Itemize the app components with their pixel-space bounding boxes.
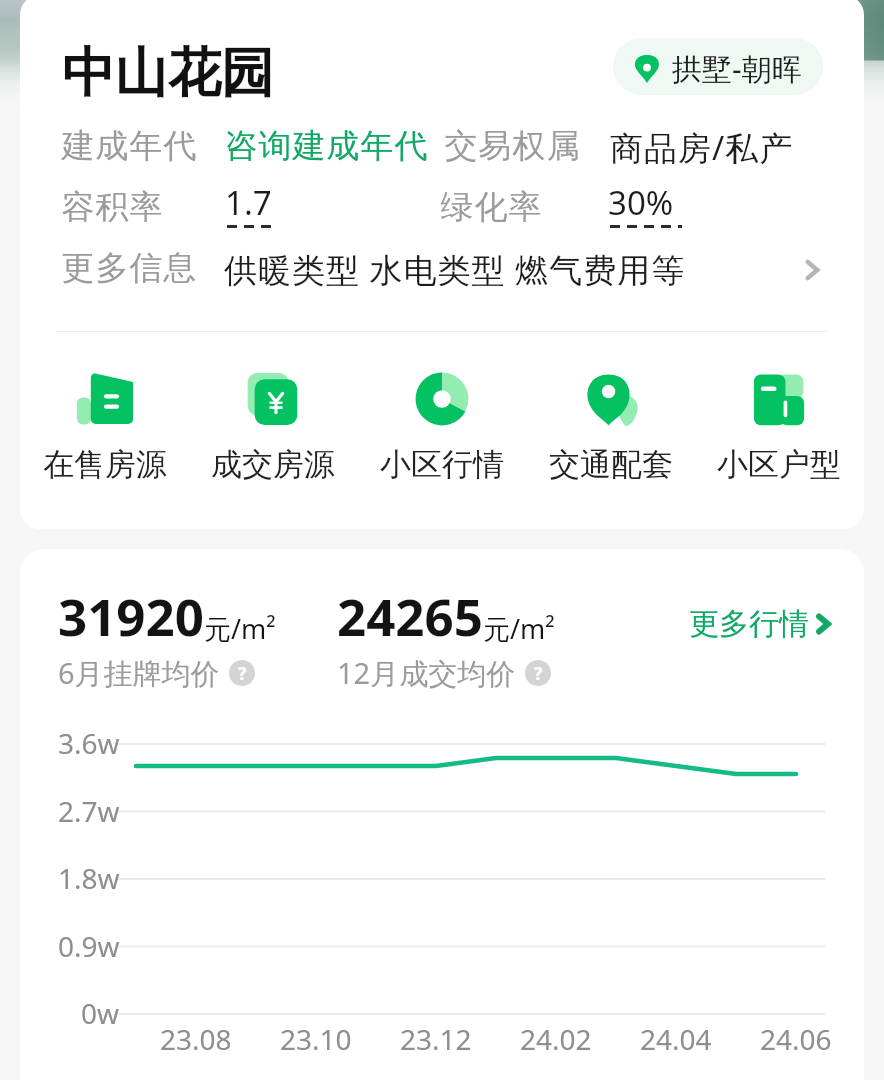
staticText: 咨询建成年代 [224, 125, 428, 167]
button[interactable]: 更多行情 [683, 599, 840, 649]
button[interactable]: 更多信息 [786, 244, 838, 296]
staticText: 商品房/私产 [610, 125, 794, 170]
staticText: 元/m² [204, 610, 276, 647]
button[interactable]: 小区户型 [695, 365, 863, 484]
staticText: 0w [81, 994, 120, 1030]
staticText: 24.06 [760, 1020, 832, 1058]
staticText: 绿化率 [440, 186, 542, 228]
staticText: 拱墅-朝晖 [672, 48, 802, 89]
button[interactable]: 小区行情 [358, 365, 526, 484]
staticText: 12月成交均价 [337, 653, 516, 693]
staticText: 1.7 [225, 180, 272, 225]
staticText: 小区户型 [717, 445, 841, 484]
staticText: 6月挂牌均价 [58, 653, 220, 693]
staticText: 中山花园 [62, 40, 274, 107]
staticText: ? [534, 661, 543, 686]
staticText: 在售房源 [43, 445, 167, 484]
staticText: 更多信息 [61, 247, 197, 289]
staticText: 更多行情 [689, 605, 809, 643]
staticText: 元/m² [483, 610, 555, 647]
staticText: 成交房源 [211, 445, 335, 484]
staticText: ? [238, 661, 247, 686]
button[interactable]: 交通配套 [527, 365, 695, 484]
staticText: 24265 [337, 581, 483, 650]
staticText: 1.8w [58, 859, 120, 895]
button[interactable]: 说明 [525, 660, 551, 686]
staticText: 0.9w [58, 927, 120, 963]
staticText: 31920 [58, 581, 204, 650]
staticText: 24.02 [520, 1020, 592, 1058]
staticText: 23.12 [400, 1020, 472, 1058]
button[interactable]: 说明 [229, 660, 255, 686]
staticText: 23.10 [280, 1020, 352, 1058]
staticText: 交易权属 [444, 125, 580, 167]
staticText: 24.04 [640, 1020, 712, 1058]
button[interactable]: 在售房源 [21, 365, 189, 484]
staticText: 容积率 [61, 186, 163, 228]
staticText: 建成年代 [61, 125, 197, 167]
staticText: 30% [608, 180, 674, 225]
staticText: 23.08 [160, 1020, 232, 1058]
staticText: 供暖类型 水电类型 燃气费用等 [224, 247, 686, 292]
staticText: 2.7w [58, 792, 120, 828]
staticText: 交通配套 [549, 445, 673, 484]
button[interactable]: 拱墅-朝晖 [613, 38, 823, 95]
button[interactable]: 成交房源 [189, 365, 357, 484]
staticText: 3.6w [58, 724, 120, 760]
staticText: 小区行情 [380, 445, 504, 484]
